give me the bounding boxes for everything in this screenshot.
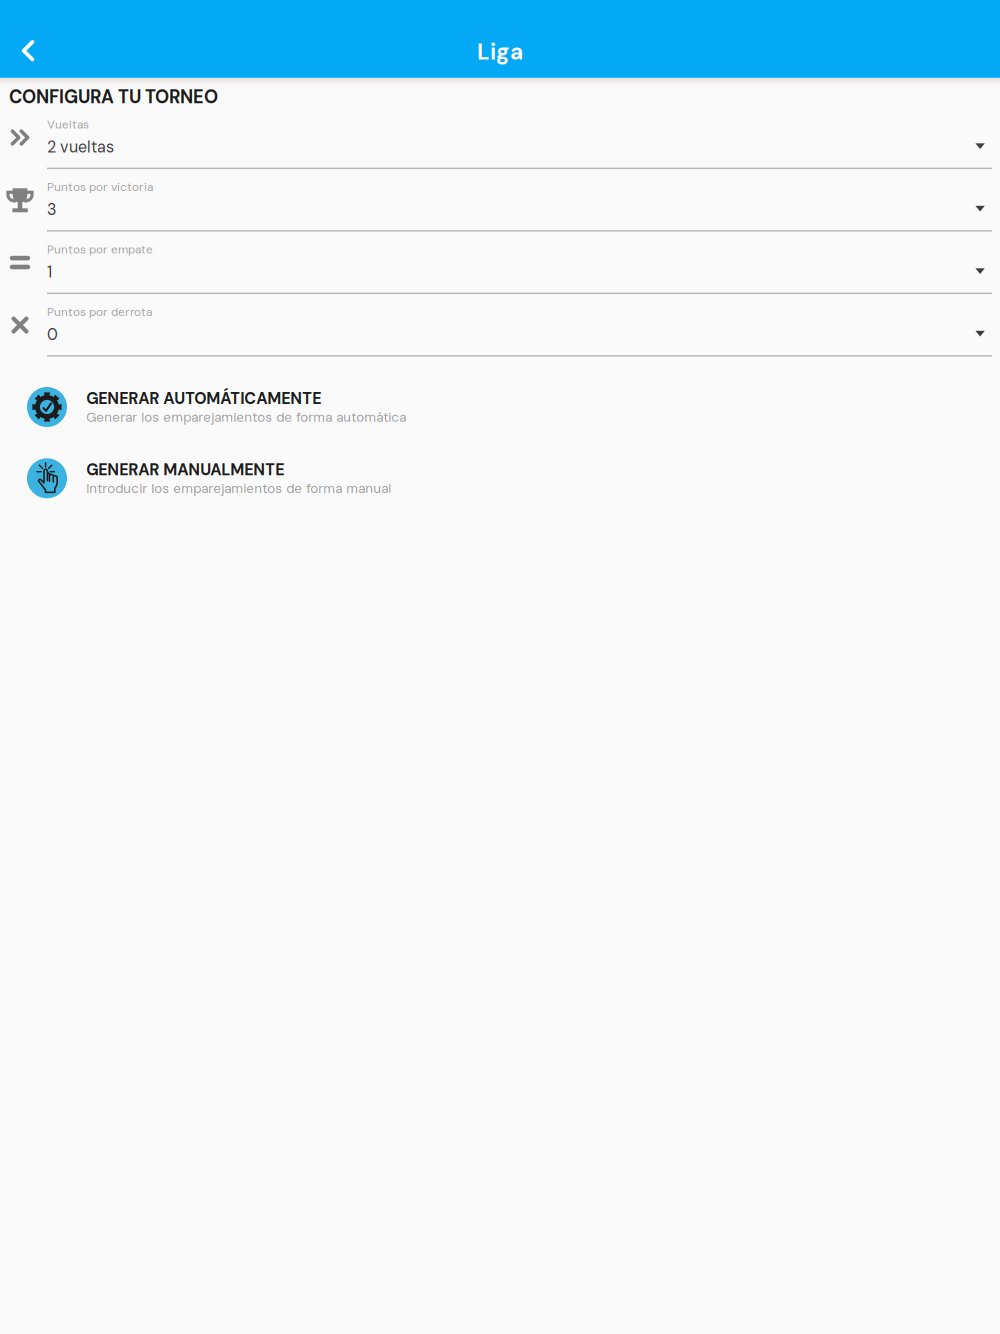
staticText: Generar los emparejamientos de forma aut… <box>86 408 406 426</box>
staticText: Introducir los emparejamientos de forma … <box>86 480 391 497</box>
button[interactable]: Vueltas <box>0 106 1000 168</box>
button[interactable]: GENERAR MANUALMENTE <box>0 446 1000 510</box>
button[interactable]: Back <box>0 29 56 73</box>
staticText: Vueltas <box>47 117 89 132</box>
staticText: Puntos por victoria <box>47 179 153 195</box>
staticText: CONFIGURA TU TORNEO <box>9 85 218 109</box>
staticText: GENERAR AUTOMÁTICAMENTE <box>86 388 321 409</box>
staticText: Liga <box>477 37 523 67</box>
staticText: 3 <box>47 199 56 220</box>
navigationBar: Liga <box>0 0 1000 78</box>
button[interactable]: Puntos por victoria <box>0 168 1000 231</box>
staticText: Puntos por empate <box>47 242 153 257</box>
button[interactable]: Puntos por empate <box>0 231 1000 293</box>
staticText: 1 <box>47 262 52 282</box>
button[interactable]: Puntos por derrota <box>0 293 1000 356</box>
button[interactable]: GENERAR AUTOMÁTICAMENTE <box>0 375 1000 439</box>
staticText: GENERAR MANUALMENTE <box>86 459 284 480</box>
staticText: Puntos por derrota <box>47 304 152 320</box>
staticText: 2 vueltas <box>47 137 114 157</box>
staticText: 0 <box>47 324 58 345</box>
